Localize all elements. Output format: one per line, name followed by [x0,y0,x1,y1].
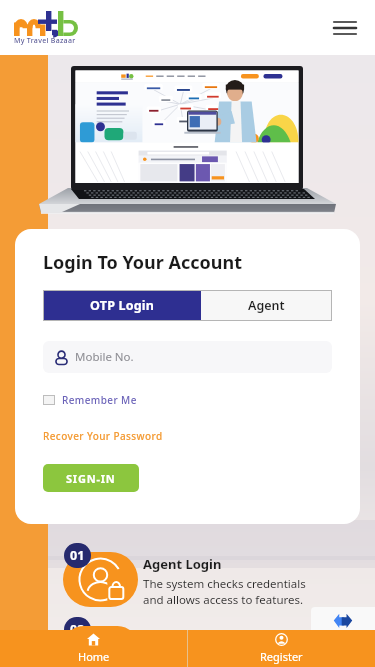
button[interactable]: Remember Me [43,393,137,407]
button[interactable]: SIGN-IN [43,464,139,492]
staticText: Agent [248,297,285,314]
staticText: SIGN-IN [66,471,116,486]
button[interactable]: Agent [201,290,332,321]
staticText: The system checks credentials and allows… [143,576,306,607]
staticText: Login To Your Account [43,250,243,275]
staticText: Remember Me [62,393,137,407]
button[interactable]: OTP Login [43,290,201,321]
button[interactable]: Home [0,630,187,667]
button[interactable]: Recover Your Password [43,429,163,443]
button[interactable]: Mobile No. [43,341,332,373]
staticText: Home [78,649,110,664]
button[interactable]: reCAPTCHA [311,607,375,632]
button[interactable]: Menu [326,9,364,47]
staticText: 01 [70,547,85,564]
staticText: Mobile No. [75,349,134,365]
staticText: Register [260,649,303,664]
button[interactable]: Agent login icon [63,552,138,607]
staticText: My Travel Bazaar [14,36,76,46]
button[interactable]: Register [188,630,375,667]
staticText: OTP Login [90,297,155,314]
staticText: 02 [70,621,85,638]
staticText: Agent Login [143,555,222,573]
